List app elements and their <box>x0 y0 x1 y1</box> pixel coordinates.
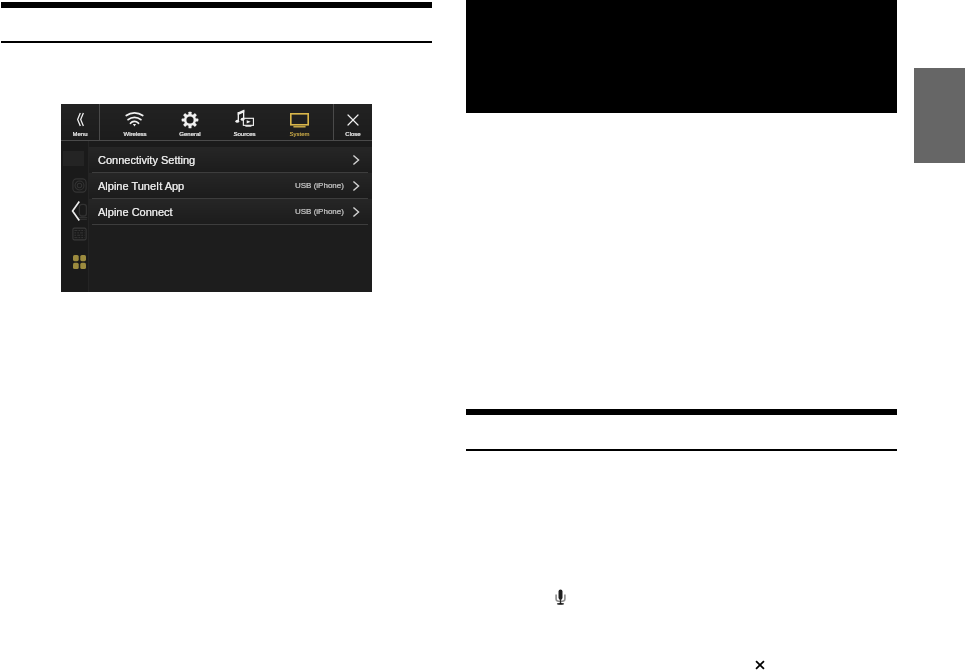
staticText: Sources <box>233 131 256 138</box>
button[interactable]: Alpine TuneIt App <box>89 173 372 198</box>
staticText: Menu <box>72 131 88 138</box>
button[interactable]: Menu <box>61 104 99 140</box>
button[interactable]: Back <box>72 201 88 221</box>
staticText: USB (iPhone) <box>295 207 344 216</box>
staticText: Alpine TuneIt App <box>98 180 185 192</box>
staticText: Connectivity Setting <box>98 154 196 166</box>
button[interactable]: Apps <box>73 255 86 269</box>
button[interactable]: General <box>162 104 217 140</box>
button[interactable]: Keypad <box>72 227 87 241</box>
button[interactable]: Wireless <box>107 104 162 140</box>
staticText: System <box>289 131 310 138</box>
staticText: Wireless <box>123 131 147 138</box>
button[interactable]: Sound <box>72 178 87 193</box>
staticText: USB (iPhone) <box>295 181 344 190</box>
button[interactable]: Close <box>754 659 766 671</box>
button[interactable]: Sources <box>217 104 272 140</box>
staticText: General <box>179 131 201 138</box>
button[interactable]: Connectivity Setting <box>89 147 372 172</box>
button[interactable]: System <box>272 104 327 140</box>
button[interactable]: Close <box>334 104 372 140</box>
staticText: Close <box>345 131 361 138</box>
staticText: Alpine Connect <box>98 206 173 218</box>
other: Microphone <box>555 589 566 605</box>
button[interactable]: Alpine Connect <box>89 199 372 224</box>
